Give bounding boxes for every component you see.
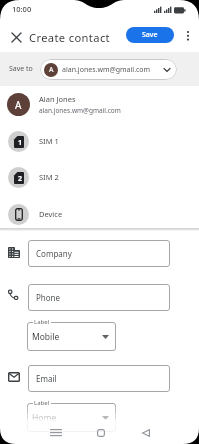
staticText: Mobile [32,331,60,343]
staticText: 2 [18,174,23,184]
button[interactable] [46,424,66,440]
button[interactable] [93,424,109,440]
button[interactable]: Save [126,27,174,43]
staticText: SIM 1 [39,136,59,146]
staticText: Alan Jones [39,94,76,104]
staticText: SIM 2 [39,172,59,182]
staticText: alan.jones.wm@gmail.com [62,65,151,75]
staticText: Email [36,373,57,384]
button[interactable] [182,28,194,44]
button[interactable]: Company [28,240,170,267]
staticText: Label [34,318,50,326]
staticText: Create contact [29,30,110,45]
staticText: 10:00 [12,4,32,14]
staticText: 1 [18,138,23,148]
button[interactable]: A [40,59,177,80]
staticText: A [15,98,22,112]
staticText: Home [32,412,57,424]
button[interactable] [8,29,24,45]
button[interactable] [138,424,154,440]
staticText: A [49,65,54,75]
staticText: Company [36,248,72,259]
button[interactable]: Device [0,196,199,232]
staticText: Save to [9,64,33,74]
staticText: Save [142,30,158,40]
button[interactable]: Mobile [27,322,116,351]
staticText: alan.jones.wm@gmail.com [39,106,121,115]
staticText: Phone [36,292,61,303]
button[interactable]: 1 [0,123,199,159]
button[interactable]: A [0,86,199,122]
button[interactable]: Phone [28,284,170,311]
staticText: Label [34,399,50,407]
button[interactable]: Home [27,403,116,432]
button[interactable]: Email [28,365,170,392]
button[interactable]: 2 [0,159,199,195]
staticText: Device [39,209,63,219]
